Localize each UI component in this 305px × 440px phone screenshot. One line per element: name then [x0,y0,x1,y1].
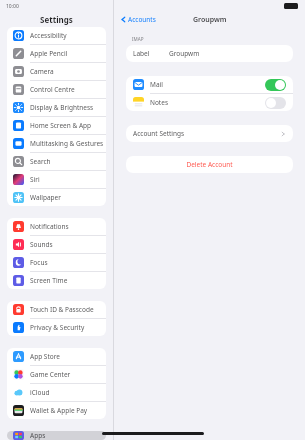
button[interactable]: Delete Account [126,156,293,173]
staticText: Accessibility [30,31,67,40]
button[interactable]: Accessibility [7,27,106,45]
staticText: Notifications [30,222,69,231]
button[interactable]: App Store [7,348,106,366]
staticText: Screen Time [30,276,68,285]
button[interactable]: Control Centre [7,81,106,99]
staticText: Groupwm [169,49,200,58]
staticText: Search [30,157,51,166]
staticText: Delete Account [186,160,233,169]
button[interactable]: Focus [7,254,106,272]
staticText: Wallet & Apple Pay [30,406,88,415]
button[interactable]: Label [126,45,293,62]
button[interactable]: Sounds [7,236,106,254]
button[interactable]: Home Screen & App Library [7,117,106,135]
staticText: Game Center [30,370,71,379]
staticText: Control Centre [30,85,75,94]
staticText: Camera [30,67,54,76]
staticText: App Store [30,352,60,361]
staticText: Touch ID & Passcode [30,305,94,314]
staticText: Apps [30,431,46,440]
staticText: 10:00 [6,3,19,10]
staticText: Apple Pencil [30,49,68,58]
other: Back [120,16,127,23]
button[interactable]: Game Center [7,366,106,384]
button[interactable]: On [265,79,286,91]
button[interactable]: Apps [7,431,106,440]
button[interactable]: Notes [126,94,293,111]
staticText: Siri [30,175,40,184]
staticText: IMAP [132,36,144,42]
staticText: Privacy & Security [30,323,85,332]
button[interactable]: Account Settings [126,125,293,142]
button[interactable]: Camera [7,63,106,81]
staticText: Account Settings [133,129,185,138]
button[interactable]: Screen Time [7,272,106,289]
staticText: Label [133,49,150,58]
staticText: Mail [150,80,163,89]
button[interactable]: Apple Pencil [7,45,106,63]
button[interactable]: Siri [7,171,106,189]
staticText: Notes [150,98,168,107]
staticText: Groupwm [193,15,227,25]
button[interactable]: Multitasking & Gestures [7,135,106,153]
button[interactable]: Wallet & Apple Pay [7,402,106,419]
staticText: Focus [30,258,48,267]
staticText: Wallpaper [30,193,61,202]
staticText: Home Screen & App Library [30,121,106,130]
staticText: Settings [40,14,73,25]
staticText: Multitasking & Gestures [30,139,104,148]
button[interactable]: Back [114,15,160,24]
button[interactable]: Off [265,97,286,109]
button[interactable]: Mail [126,76,293,93]
staticText: Accounts [128,15,156,24]
button[interactable]: Display & Brightness [7,99,106,117]
staticText: iCloud [30,388,50,397]
button[interactable]: Wallpaper [7,189,106,206]
button[interactable]: Privacy & Security [7,319,106,336]
button[interactable]: Search [7,153,106,171]
button[interactable]: Touch ID & Passcode [7,301,106,319]
staticText: Display & Brightness [30,103,94,112]
button[interactable]: iCloud [7,384,106,402]
staticText: Sounds [30,240,53,249]
button[interactable]: Notifications [7,218,106,236]
